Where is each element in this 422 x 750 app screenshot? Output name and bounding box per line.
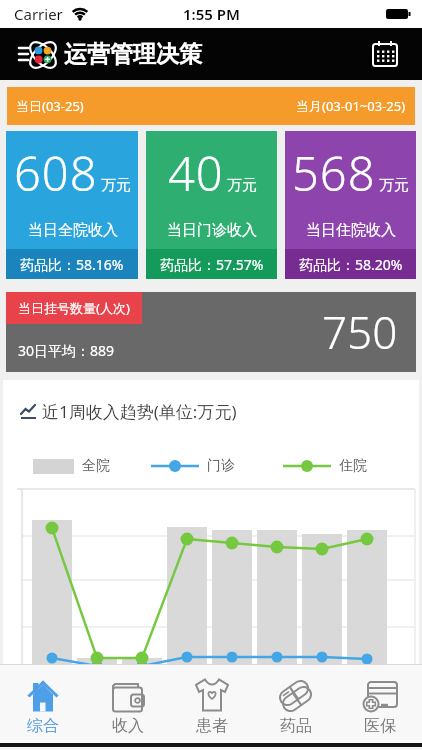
staticText: 当日门诊收入 [167,221,257,240]
staticText: 万元 [227,176,257,195]
staticText: Carrier [14,4,63,24]
staticText: 医保 [364,716,396,736]
staticText: 近1周收入趋势(单位:万元) [42,400,237,423]
button[interactable]: 608 [6,131,138,279]
button[interactable]: 综合 [0,665,85,743]
staticText: 当日(03-25) [16,97,84,115]
staticText: 当日全院收入 [28,221,118,240]
button[interactable]: 当日(03-25) [16,87,406,125]
button[interactable]: 医保 [338,665,422,743]
staticText: 30日平均：889 [18,341,115,360]
button[interactable]: 568 [285,131,416,279]
staticText: 1:55 PM [183,4,240,24]
staticText: 当月(03-01~03-25) [296,97,406,115]
button[interactable] [14,30,62,78]
staticText: 综合 [27,716,59,736]
staticText: 药品 [280,716,312,736]
staticText: 药品比：58.16% [20,255,124,274]
staticText: 608 [14,141,98,205]
button[interactable]: 药品 [254,665,338,743]
button[interactable]: 当日挂号数量(人次) [6,292,416,372]
button[interactable]: 40 [146,131,277,279]
staticText: 药品比：57.57% [160,255,264,274]
staticText: 40 [168,141,224,205]
staticText: 门诊 [207,457,235,475]
staticText: 药品比：58.20% [299,255,403,274]
staticText: 568 [292,141,376,205]
staticText: 收入 [112,716,144,736]
staticText: 万元 [101,176,131,195]
staticText: 当日挂号数量(人次) [18,299,130,317]
staticText: 住院 [339,457,367,475]
staticText: 万元 [379,176,409,195]
button[interactable]: 患者 [170,665,254,743]
button[interactable] [372,41,398,67]
staticText: 当日住院收入 [306,221,396,240]
staticText: 运营管理决策 [64,40,202,69]
staticText: 患者 [196,716,228,736]
staticText: 750 [322,302,398,362]
staticText: 全院 [82,457,110,475]
button[interactable]: 收入 [85,665,170,743]
